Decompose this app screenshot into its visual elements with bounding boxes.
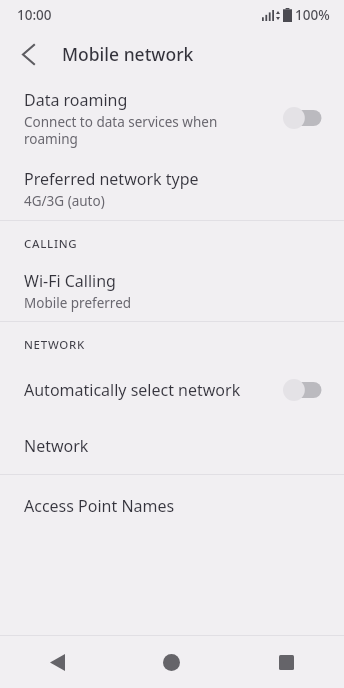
button[interactable]: Wi-Fi Calling <box>0 261 344 321</box>
button[interactable]: Recent apps <box>229 636 344 688</box>
staticText: Connect to data services when roaming <box>24 113 268 148</box>
button[interactable]: Back <box>10 36 46 72</box>
button[interactable]: Home <box>114 636 229 688</box>
staticText: Preferred network type <box>24 168 199 190</box>
button[interactable]: Data roaming <box>0 78 344 158</box>
staticText: Automatically select network <box>24 379 241 401</box>
staticText: Mobile network <box>62 42 194 66</box>
button[interactable]: Access Point Names <box>0 475 344 537</box>
button[interactable]: Preferred network type <box>0 158 344 220</box>
button[interactable]: Network <box>0 418 344 474</box>
staticText: NETWORK <box>24 337 85 353</box>
button[interactable]: Toggle <box>282 377 324 403</box>
staticText: 100% <box>295 6 330 24</box>
staticText: CALLING <box>24 236 78 252</box>
staticText: Network <box>24 435 89 457</box>
staticText: Data roaming <box>24 89 128 111</box>
staticText: Access Point Names <box>24 495 175 517</box>
staticText: Wi-Fi Calling <box>24 270 116 292</box>
button[interactable]: Back <box>0 636 114 688</box>
staticText: 4G/3G (auto) <box>24 192 105 210</box>
button[interactable]: Automatically select network <box>0 362 344 418</box>
button[interactable]: Toggle <box>282 105 324 131</box>
staticText: Mobile preferred <box>24 294 132 312</box>
staticText: 10:00 <box>17 6 52 24</box>
